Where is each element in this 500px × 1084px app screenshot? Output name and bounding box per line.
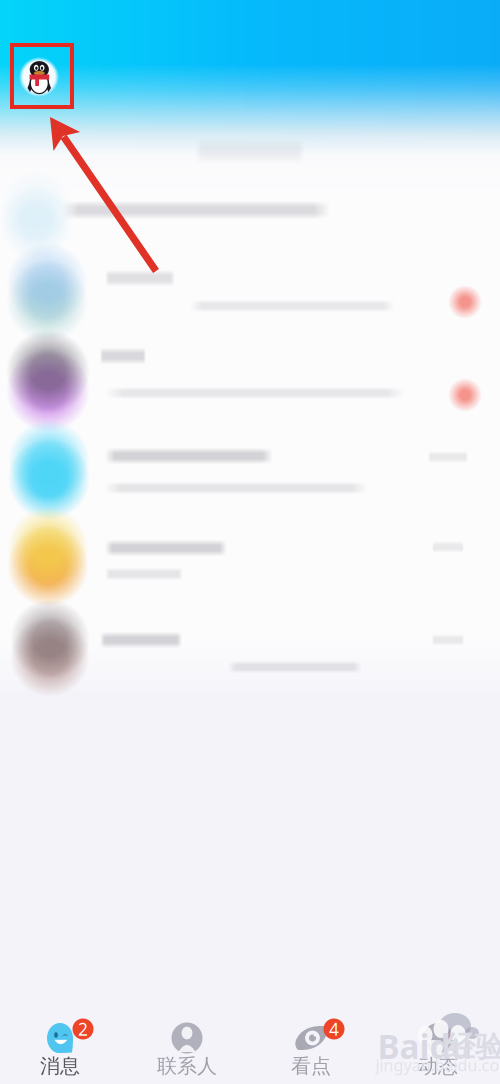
staticText: 经验 [446, 1029, 500, 1065]
button[interactable] [0, 0, 500, 1084]
staticText: jingyan.baidu.com [375, 1054, 500, 1076]
staticText: 联系人 [157, 1054, 217, 1078]
button[interactable]: 看点 [0, 0, 500, 1084]
button[interactable]: 联系人 [0, 0, 500, 1084]
button[interactable] [0, 0, 500, 1084]
staticText: 2 [78, 1017, 88, 1040]
staticText: 4 [329, 1017, 339, 1040]
button[interactable] [0, 0, 500, 1084]
staticText: Baidu [377, 1024, 472, 1068]
button[interactable] [0, 0, 500, 1084]
staticText: 消息 [40, 1054, 80, 1078]
staticText: 动态 [418, 1054, 458, 1078]
staticText: 看点 [291, 1054, 331, 1078]
button[interactable] [0, 0, 500, 1084]
button[interactable]: 消息 [0, 0, 500, 1084]
button[interactable]: 动态 [0, 0, 500, 1084]
button[interactable] [0, 0, 500, 1084]
